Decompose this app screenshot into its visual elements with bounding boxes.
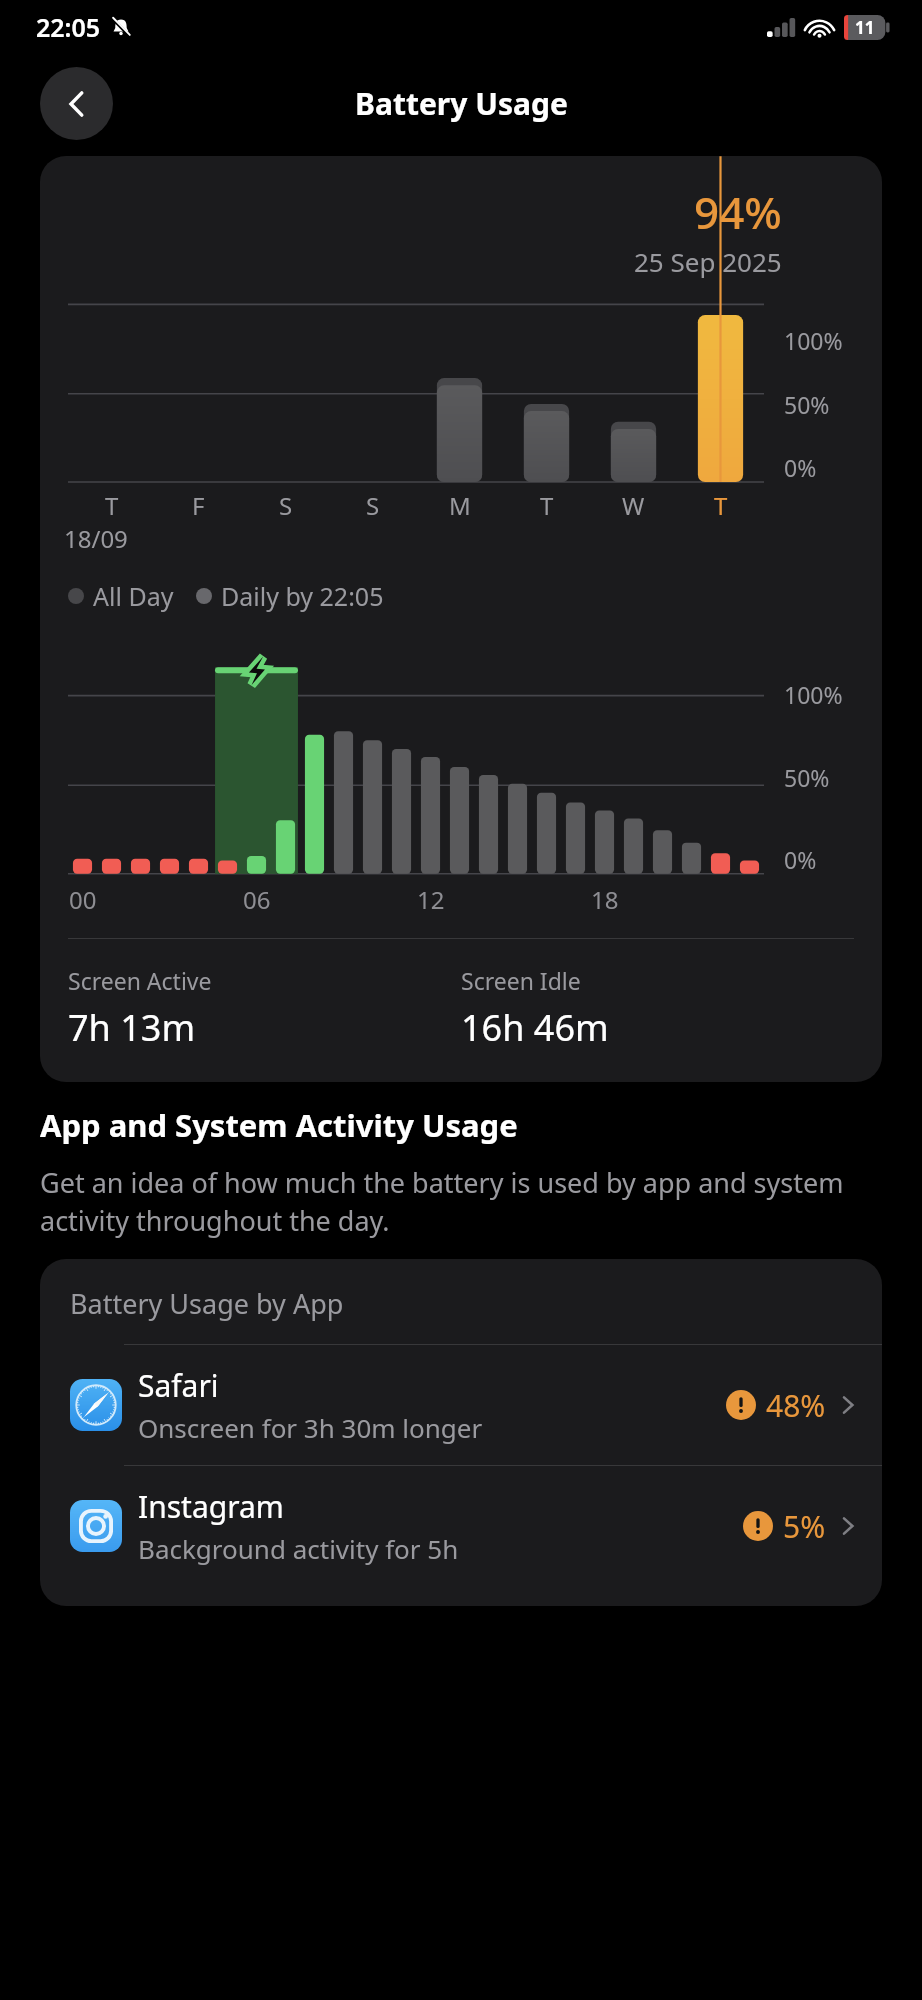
staticText: T [540, 489, 554, 522]
staticText: Onscreen for 3h 30m longer [138, 1410, 483, 1445]
staticText: F [192, 489, 205, 522]
staticText: App and System Activity Usage [40, 1104, 518, 1146]
staticText: 11 [855, 16, 875, 39]
staticText: 16h 46m [461, 1003, 609, 1052]
staticText: 06 [243, 883, 271, 916]
staticText: M [449, 489, 471, 522]
button[interactable]: Safari [40, 1345, 882, 1465]
staticText: 0% [784, 844, 817, 875]
staticText: T [105, 489, 119, 522]
staticText: 25 Sep 2025 [634, 244, 782, 279]
staticText: 50% [784, 762, 830, 793]
staticText: 12 [417, 883, 445, 916]
staticText: Screen Active [68, 965, 212, 996]
staticText: 100% [784, 679, 843, 710]
staticText: Screen Idle [461, 965, 581, 996]
staticText: 7h 13m [68, 1003, 196, 1052]
staticText: W [622, 489, 645, 522]
staticText: 50% [784, 389, 830, 420]
staticText: S [366, 489, 380, 522]
staticText: 18/09 [64, 522, 128, 555]
staticText: Safari [138, 1365, 219, 1406]
staticText: Battery Usage by App [70, 1285, 344, 1322]
staticText: Daily by 22:05 [221, 579, 384, 613]
staticText: All Day [93, 579, 174, 613]
staticText: 5% [783, 1506, 826, 1547]
staticText: 100% [784, 325, 843, 356]
staticText: Instagram [138, 1486, 284, 1527]
staticText: Get an idea of how much the battery is u… [40, 1164, 882, 1239]
button[interactable]: Instagram [40, 1466, 882, 1586]
staticText: 22:05 [36, 10, 101, 44]
staticText: Background activity for 5h [138, 1531, 459, 1566]
staticText: 94% [694, 182, 782, 242]
staticText: S [279, 489, 293, 522]
staticText: Battery Usage [355, 83, 568, 124]
staticText: 48% [766, 1385, 826, 1426]
staticText: 00 [69, 883, 97, 916]
staticText: 18 [591, 883, 619, 916]
staticText: T [714, 489, 728, 522]
button[interactable]: Back [40, 67, 113, 140]
staticText: 0% [784, 452, 817, 483]
